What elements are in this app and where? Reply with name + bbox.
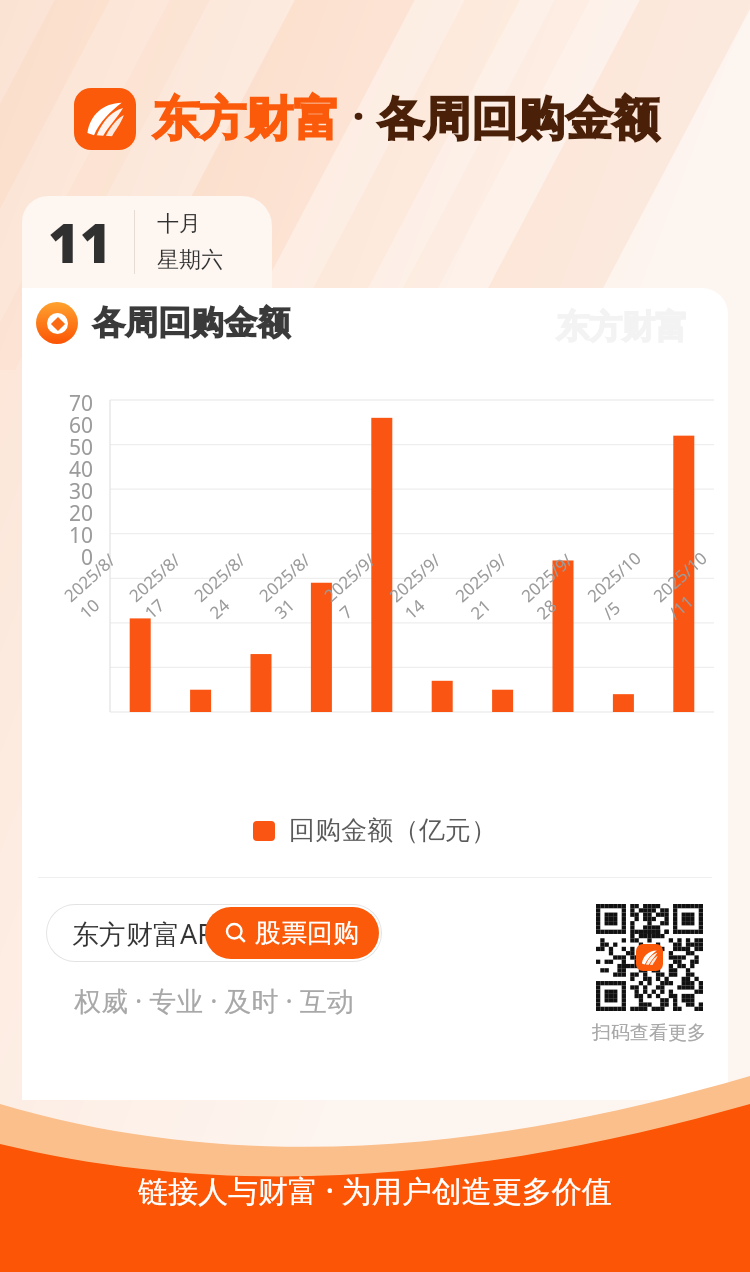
staticText: 40 [69, 455, 94, 477]
staticText: 十月 [157, 210, 201, 238]
staticText: 2025/9/28 [516, 546, 596, 624]
staticText: 2025/9/21 [450, 546, 530, 624]
staticText: 2025/8/31 [254, 546, 333, 624]
button[interactable]: 东方财富APP [46, 904, 382, 962]
staticText: 星期六 [157, 246, 223, 274]
other: QR code [596, 904, 703, 1011]
staticText: 权威 · 专业 · 及时 · 互动 [74, 982, 354, 1019]
staticText: 70 [69, 389, 94, 411]
staticText: 10 [69, 521, 94, 543]
staticText: 各周回购金额 [92, 302, 290, 344]
staticText: 50 [69, 433, 94, 455]
staticText: 2025/9/7 [319, 546, 398, 624]
staticText: 30 [69, 477, 94, 499]
staticText: 回购金额（亿元） [289, 814, 497, 847]
staticText: 股票回购 [255, 917, 359, 950]
staticText: 扫码查看更多 [592, 1021, 706, 1045]
button[interactable]: 股票回购 [205, 907, 379, 959]
staticText: 2025/10/5 [582, 546, 662, 624]
staticText: 11 [48, 205, 112, 279]
staticText: 2025/8/24 [189, 546, 268, 624]
staticText: 各周回购金额 [377, 90, 659, 149]
staticText: 东方财富 [556, 306, 688, 348]
staticText: 东方财富APP [72, 915, 230, 952]
staticText: 0 [81, 543, 94, 565]
staticText: 60 [69, 411, 94, 433]
staticText: 东方财富 [152, 90, 340, 149]
staticText: 2025/8/17 [124, 546, 203, 624]
staticText: 20 [69, 499, 94, 521]
staticText: 2025/10/11 [648, 546, 728, 624]
staticText: 链接人与财富 · 为用户创造更多价值 [138, 1170, 612, 1211]
staticText: 2025/8/10 [59, 546, 138, 624]
staticText: 2025/9/14 [384, 546, 464, 624]
staticText: · [353, 89, 364, 141]
